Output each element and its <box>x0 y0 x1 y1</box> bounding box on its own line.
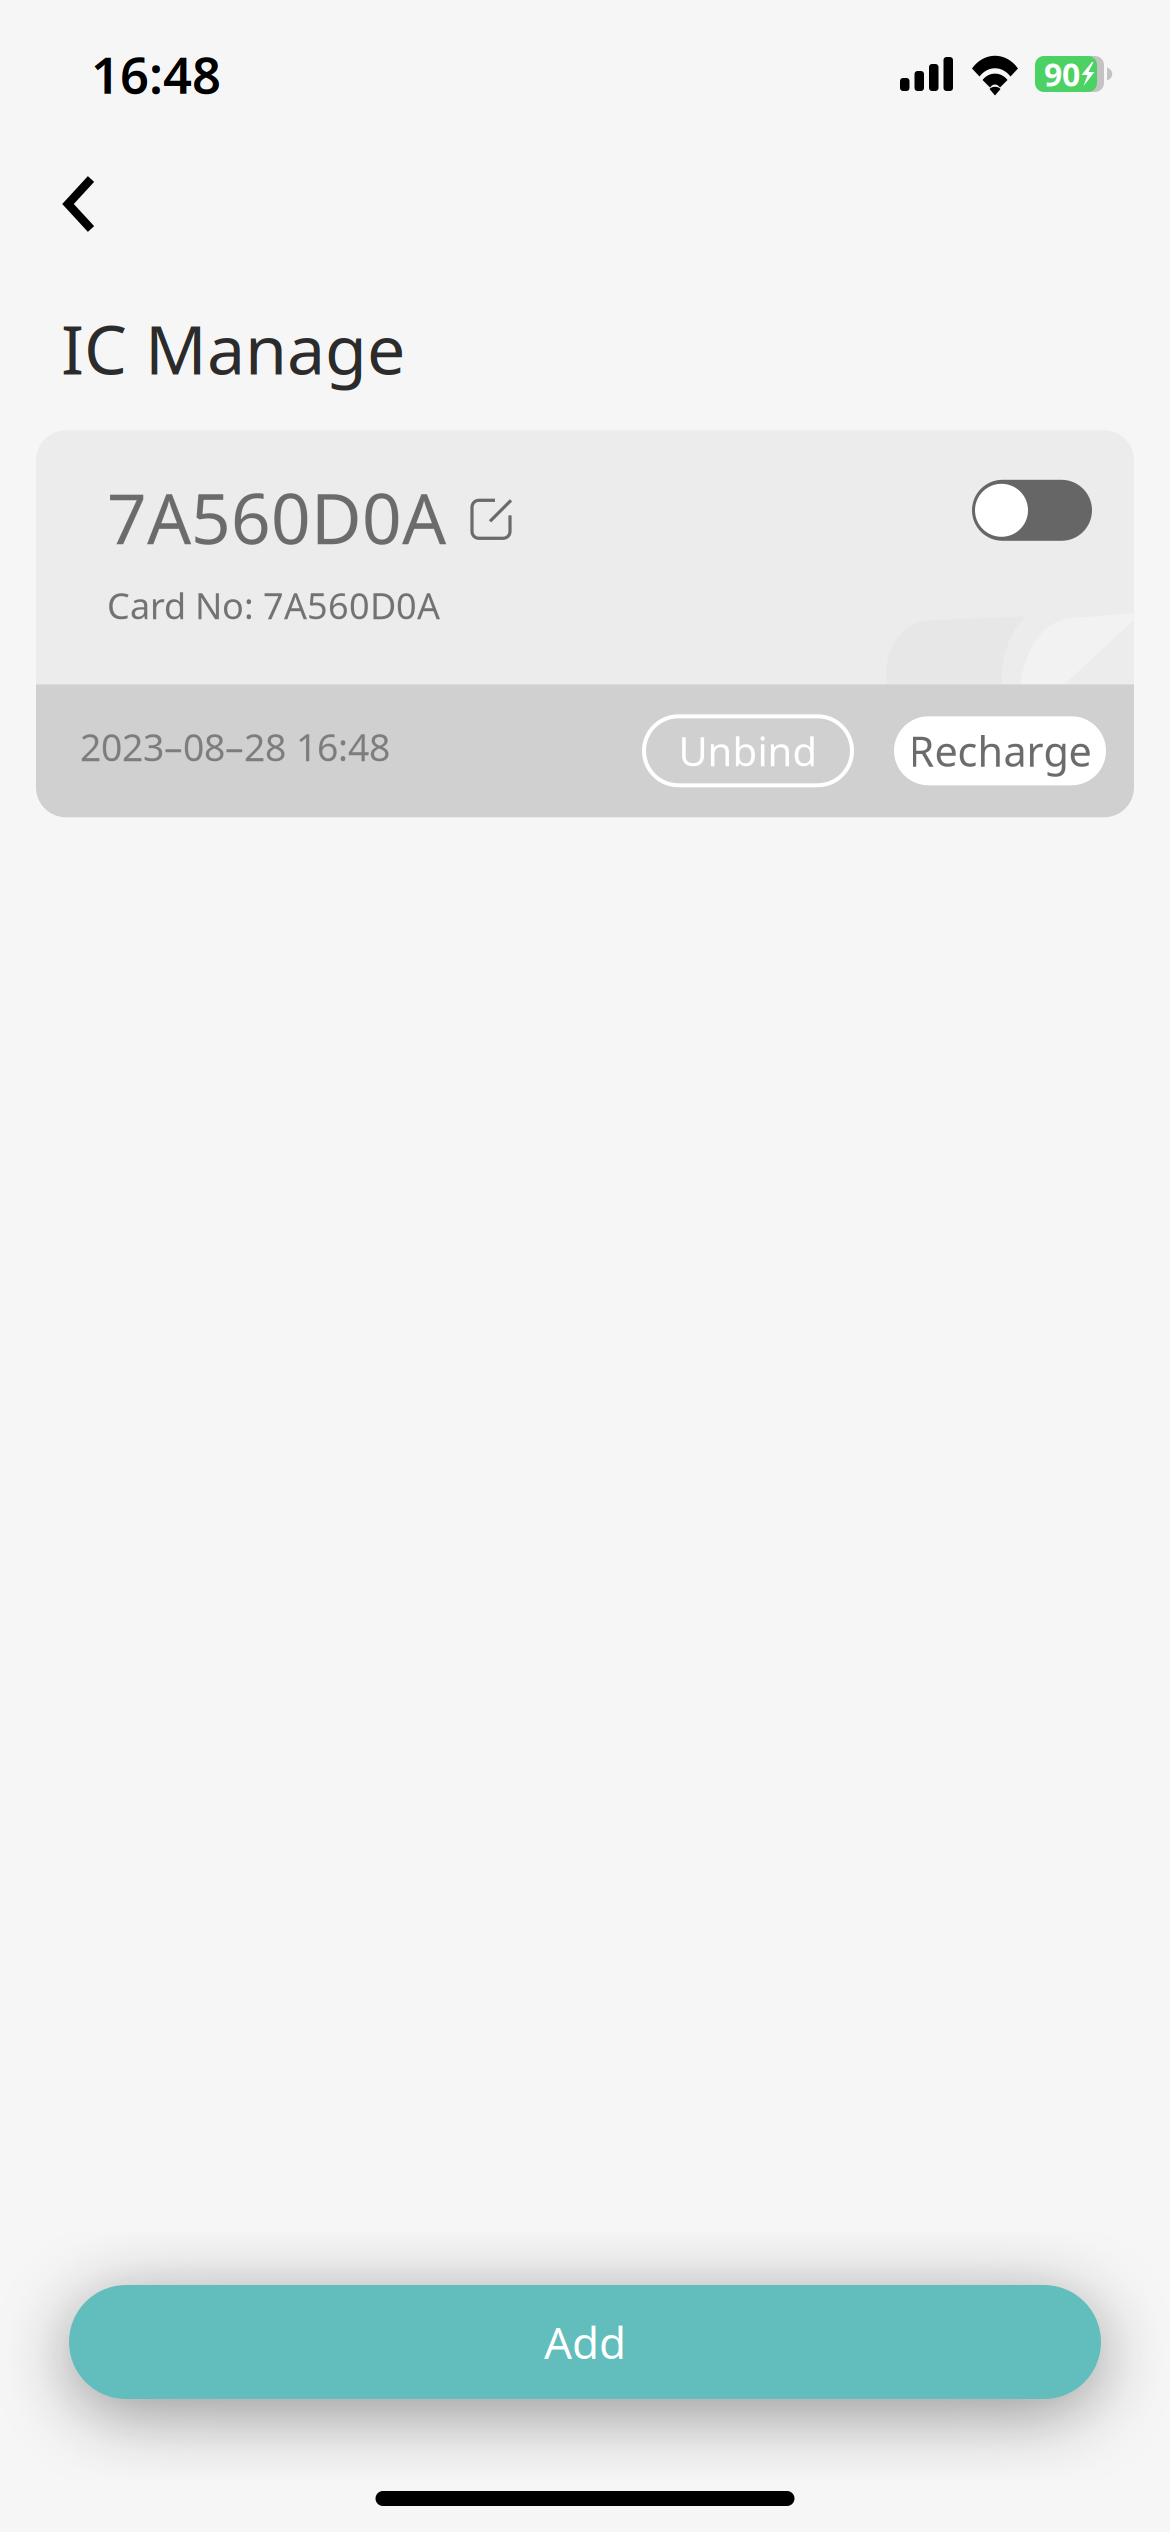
button[interactable]: Back <box>31 140 118 250</box>
staticText: Card No: 7A560D0A <box>107 581 440 629</box>
staticText: 2023–08–28 16:48 <box>80 722 390 772</box>
staticText: 7A560D0A <box>107 471 446 563</box>
staticText: Recharge <box>908 723 1091 778</box>
staticText: 16:48 <box>91 40 221 108</box>
button[interactable]: Rename card <box>470 498 512 540</box>
staticText: 90 <box>1044 53 1080 95</box>
staticText: Add <box>544 2313 626 2371</box>
button[interactable]: Enable card <box>972 480 1092 541</box>
staticText: Unbind <box>678 724 817 777</box>
button[interactable]: Recharge <box>894 716 1106 785</box>
staticText: IC Manage <box>61 303 405 393</box>
button[interactable]: Unbind <box>644 716 852 785</box>
button[interactable]: Add <box>69 2285 1101 2399</box>
